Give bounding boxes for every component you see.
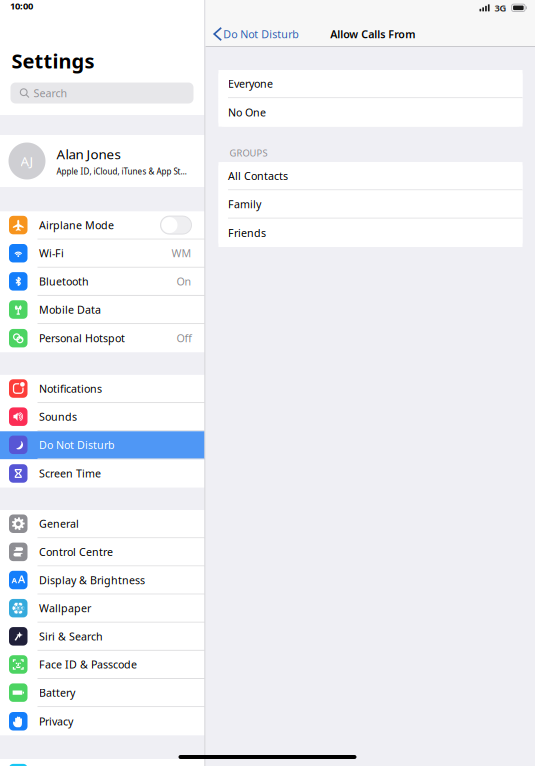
button[interactable]: Personal Hotspot <box>0 324 204 352</box>
staticText: Apple ID, iCloud, iTunes & App St… <box>56 166 186 177</box>
staticText: Bluetooth <box>39 274 89 288</box>
button[interactable]: Wi-Fi <box>0 240 204 268</box>
staticText: Screen Time <box>39 466 101 481</box>
button[interactable]: Siri & Search <box>0 623 204 651</box>
staticText: Control Centre <box>39 545 113 559</box>
staticText: No One <box>228 105 266 120</box>
staticText: Family <box>228 197 261 211</box>
staticText: Off <box>176 331 191 345</box>
staticText: All Contacts <box>228 169 288 183</box>
button[interactable]: General <box>0 510 204 538</box>
button[interactable]: Privacy <box>0 707 204 735</box>
button[interactable]: All Contacts <box>218 162 522 190</box>
button[interactable]: Control Centre <box>0 538 204 566</box>
button[interactable]: Everyone <box>218 70 522 98</box>
button[interactable]: Wallpaper <box>0 595 204 623</box>
staticText: General <box>39 517 79 531</box>
staticText: WM <box>171 246 191 260</box>
button[interactable]: Do Not Disturb <box>205 23 299 45</box>
button[interactable]: Battery <box>0 679 204 707</box>
staticText: Alan Jones <box>56 145 120 163</box>
button[interactable]: Mobile Data <box>0 296 204 324</box>
staticText: Wi-Fi <box>39 246 64 260</box>
button[interactable]: Sounds <box>0 403 204 431</box>
button[interactable]: Notifications <box>0 375 204 403</box>
button[interactable]: Face ID & Passcode <box>0 651 204 679</box>
staticText: Siri & Search <box>39 629 103 643</box>
staticText: Sounds <box>39 410 77 424</box>
button[interactable]: AJ <box>0 135 204 187</box>
button[interactable]: Airplane Mode <box>0 211 204 240</box>
button[interactable]: Display & Brightness <box>0 566 204 594</box>
staticText: Settings <box>11 47 94 74</box>
staticText: Display & Brightness <box>39 573 145 587</box>
staticText: Privacy <box>39 714 73 728</box>
staticText: On <box>176 274 191 288</box>
button[interactable]: Do Not Disturb <box>0 431 204 459</box>
button[interactable]: Friends <box>218 219 522 247</box>
staticText: Everyone <box>228 77 273 91</box>
button[interactable]: Screen Time <box>0 459 204 487</box>
button[interactable]: Bluetooth <box>0 268 204 296</box>
staticText: Do Not Disturb <box>223 27 299 41</box>
staticText: Face ID & Passcode <box>39 657 137 672</box>
staticText: 10:00 <box>10 0 33 12</box>
staticText: AJ <box>20 152 33 170</box>
staticText: Do Not Disturb <box>39 438 115 452</box>
button[interactable]: App Store <box>0 759 204 766</box>
staticText: Wallpaper <box>39 601 91 615</box>
staticText: 3G <box>495 2 507 14</box>
button[interactable]: No One <box>218 98 522 127</box>
staticText: Mobile Data <box>39 302 101 317</box>
staticText: Search <box>33 86 67 100</box>
staticText: GROUPS <box>229 147 267 159</box>
staticText: Friends <box>228 226 266 240</box>
staticText: Battery <box>39 685 75 700</box>
staticText: Notifications <box>39 381 102 396</box>
staticText: Airplane Mode <box>39 218 114 232</box>
button[interactable]: Family <box>218 190 522 219</box>
staticText: Allow Calls From <box>330 27 415 41</box>
staticText: Personal Hotspot <box>39 331 125 345</box>
